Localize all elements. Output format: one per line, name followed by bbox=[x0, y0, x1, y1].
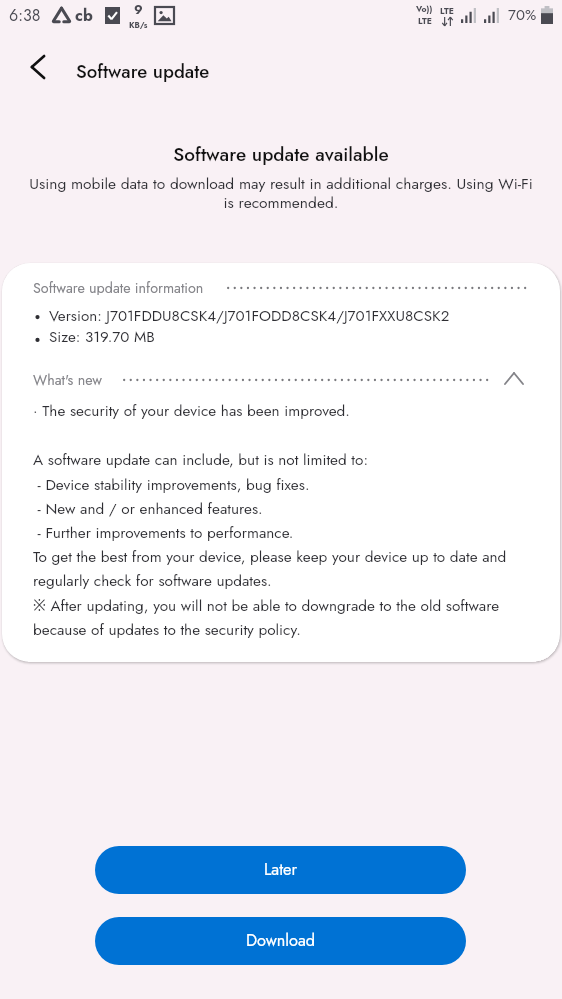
staticText: Software update information bbox=[33, 278, 204, 295]
button[interactable]: Later bbox=[95, 846, 466, 894]
staticText: 6:38 bbox=[9, 4, 41, 27]
staticText: Download bbox=[246, 929, 316, 953]
button[interactable]: Navigate up bbox=[14, 43, 62, 91]
staticText: Software update bbox=[76, 58, 210, 85]
staticText: LTE bbox=[440, 5, 454, 17]
button[interactable]: Collapse What's new bbox=[500, 370, 528, 387]
staticText: KB/s bbox=[129, 19, 148, 30]
staticText: Using mobile data to download may result… bbox=[0, 172, 562, 214]
staticText: · The security of your device has been i… bbox=[33, 400, 350, 422]
staticText: Later bbox=[264, 858, 298, 882]
staticText: A software update can include, but is no… bbox=[33, 449, 533, 641]
staticText: Version: J701FDDU8CSK4/J701FODD8CSK4/J70… bbox=[49, 305, 450, 348]
staticText: cb bbox=[75, 4, 93, 27]
button[interactable]: Download bbox=[95, 917, 466, 965]
staticText: What's new bbox=[33, 370, 103, 387]
staticText: 9 bbox=[134, 0, 143, 19]
staticText: LTE bbox=[418, 15, 432, 27]
staticText: 70% bbox=[508, 4, 537, 26]
staticText: Vo)) bbox=[416, 3, 433, 15]
staticText: Software update available bbox=[0, 141, 562, 168]
